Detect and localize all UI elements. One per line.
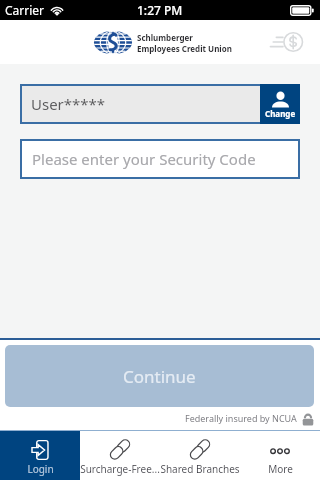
- button[interactable]: User*****: [20, 84, 300, 124]
- staticText: Login: [27, 462, 54, 476]
- button[interactable]: Surcharge-Free...: [80, 431, 160, 480]
- button[interactable]: More: [240, 431, 320, 480]
- staticText: Schlumberger: [137, 32, 193, 43]
- staticText: Change: [265, 108, 296, 119]
- button[interactable]: Quick balance: [265, 25, 309, 59]
- button[interactable]: Shared Branches: [160, 431, 240, 480]
- staticText: Employees Credit Union: [137, 43, 232, 54]
- staticText: Carrier: [5, 2, 45, 18]
- staticText: Shared Branches: [160, 462, 240, 476]
- button[interactable]: Change: [260, 84, 300, 124]
- staticText: Federally insured by NCUA: [185, 412, 297, 424]
- button[interactable]: Please enter your Security Code: [20, 139, 300, 179]
- staticText: More: [268, 462, 293, 476]
- staticText: Please enter your Security Code: [32, 149, 256, 169]
- button[interactable]: Continue: [5, 345, 314, 407]
- staticText: User*****: [31, 94, 106, 114]
- staticText: Surcharge-Free...: [80, 462, 160, 476]
- staticText: Continue: [123, 365, 196, 388]
- button[interactable]: Login: [0, 431, 80, 480]
- staticText: 1:27 PM: [137, 2, 183, 18]
